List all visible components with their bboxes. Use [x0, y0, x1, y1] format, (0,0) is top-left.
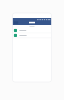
button[interactable]	[12, 28, 51, 33]
button[interactable]	[12, 33, 51, 38]
button[interactable]: Back	[12, 21, 18, 24]
